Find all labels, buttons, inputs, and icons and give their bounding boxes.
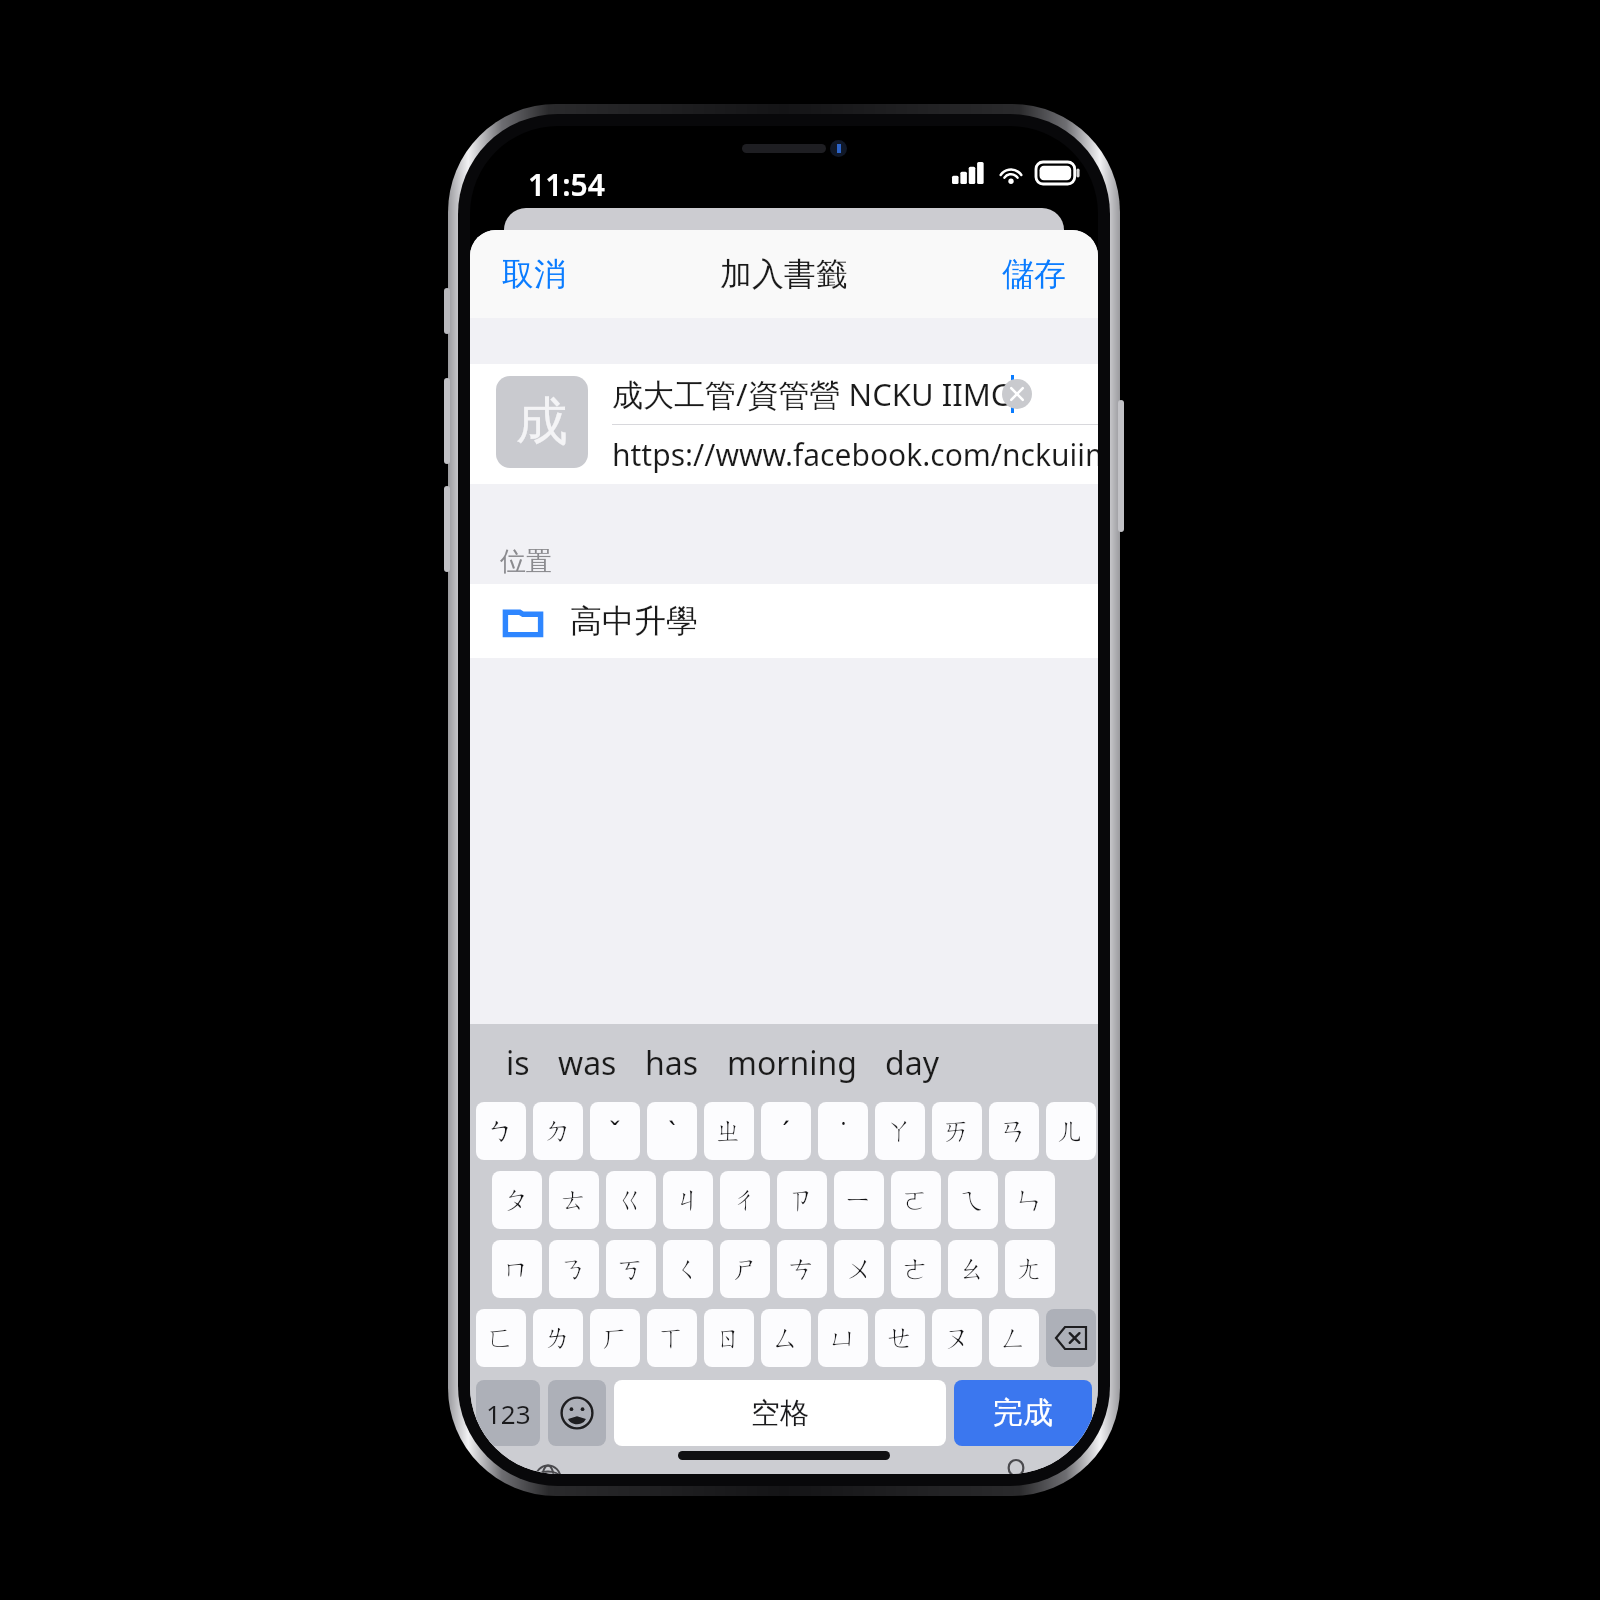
staticText: ㄗ <box>788 1183 816 1217</box>
button[interactable]: ㄓ <box>704 1102 754 1160</box>
staticText: morning <box>727 1041 857 1085</box>
button[interactable]: ˊ <box>761 1102 811 1160</box>
button[interactable]: https://www.facebook.com/nckuiimc/ <box>612 424 1098 484</box>
staticText: ㄒ <box>658 1321 686 1355</box>
button[interactable]: ㄏ <box>590 1309 640 1367</box>
staticText: ㄐ <box>674 1183 702 1217</box>
button[interactable]: ㄌ <box>533 1309 583 1367</box>
staticText: ㄖ <box>715 1321 743 1355</box>
button[interactable]: ㄉ <box>533 1102 583 1160</box>
button[interactable]: ˇ <box>590 1102 640 1160</box>
staticText: ㄕ <box>731 1252 759 1286</box>
staticText: ㄋ <box>560 1252 588 1286</box>
staticText: 完成 <box>993 1394 1053 1432</box>
button[interactable]: ㄍ <box>606 1171 656 1229</box>
button[interactable]: ㄋ <box>549 1240 599 1298</box>
button[interactable]: ㄐ <box>663 1171 713 1229</box>
button[interactable]: ㄅ <box>476 1102 526 1160</box>
staticText: ㄘ <box>788 1252 816 1286</box>
staticText: ㄢ <box>1000 1114 1028 1148</box>
button[interactable]: ㄖ <box>704 1309 754 1367</box>
button[interactable]: ㄢ <box>989 1102 1039 1160</box>
button[interactable]: ㄛ <box>891 1171 941 1229</box>
staticText: ㄊ <box>560 1183 588 1217</box>
button[interactable]: morning <box>713 1033 871 1093</box>
button[interactable]: ㄨ <box>834 1240 884 1298</box>
button[interactable]: 成大工管/資管營 NCKU IIMC <box>612 364 1098 424</box>
button[interactable]: ㄣ <box>1005 1171 1055 1229</box>
staticText: ˙ <box>841 1113 846 1150</box>
button[interactable]: ㄑ <box>663 1240 713 1298</box>
button[interactable]: day <box>871 1033 953 1093</box>
staticText: ㄇ <box>503 1252 531 1286</box>
staticText: was <box>558 1041 617 1085</box>
staticText: ㄑ <box>674 1252 702 1286</box>
button[interactable]: ㄕ <box>720 1240 770 1298</box>
button[interactable]: ㄒ <box>647 1309 697 1367</box>
staticText: ˋ <box>668 1113 676 1150</box>
button[interactable]: ㄇ <box>492 1240 542 1298</box>
staticText: 儲存 <box>1002 254 1066 294</box>
staticText: ㄡ <box>943 1321 971 1355</box>
button[interactable]: 123 <box>476 1380 540 1446</box>
staticText: ㄣ <box>1016 1183 1044 1217</box>
staticText: ㄍ <box>617 1183 645 1217</box>
staticText: 成大工管/資管營 NCKU IIMC <box>612 373 1011 415</box>
button[interactable]: ˋ <box>647 1102 697 1160</box>
staticText: ㄉ <box>544 1114 572 1148</box>
staticText: ㄜ <box>902 1252 930 1286</box>
button[interactable]: ㄡ <box>932 1309 982 1367</box>
staticText: ㄠ <box>959 1252 987 1286</box>
button[interactable]: Clear text <box>1000 377 1034 411</box>
button[interactable]: Emoji keyboard <box>548 1380 606 1446</box>
staticText: ㄌ <box>544 1321 572 1355</box>
button[interactable]: ㄠ <box>948 1240 998 1298</box>
button[interactable]: ㄞ <box>932 1102 982 1160</box>
staticText: has <box>645 1041 699 1085</box>
button[interactable]: ㄝ <box>875 1309 925 1367</box>
staticText: ㄅ <box>487 1114 515 1148</box>
button[interactable]: 儲存 <box>990 244 1078 304</box>
button[interactable]: 完成 <box>954 1380 1092 1446</box>
staticText: 位置 <box>500 545 552 578</box>
staticText: https://www.facebook.com/nckuiimc/ <box>612 434 1098 475</box>
staticText: 成 <box>516 389 568 455</box>
button[interactable]: 取消 <box>490 244 578 304</box>
button[interactable]: ˙ <box>818 1102 868 1160</box>
staticText: ㄈ <box>487 1321 515 1355</box>
button[interactable]: ㄟ <box>948 1171 998 1229</box>
button[interactable]: ㄦ <box>1046 1102 1096 1160</box>
staticText: ㄆ <box>503 1183 531 1217</box>
button[interactable]: ㄙ <box>761 1309 811 1367</box>
staticText: ㄨ <box>845 1252 873 1286</box>
button[interactable]: Backspace <box>1046 1309 1096 1367</box>
button[interactable]: ㄩ <box>818 1309 868 1367</box>
button[interactable]: ㄎ <box>606 1240 656 1298</box>
button[interactable]: has <box>631 1033 713 1093</box>
button[interactable]: ㄤ <box>1005 1240 1055 1298</box>
button[interactable]: 空格 <box>614 1380 946 1446</box>
button[interactable]: ㄘ <box>777 1240 827 1298</box>
button[interactable]: was <box>544 1033 631 1093</box>
staticText: ㄚ <box>886 1114 914 1148</box>
staticText: ㄎ <box>617 1252 645 1286</box>
staticText: ㄧ <box>845 1183 873 1217</box>
button[interactable]: Dictation <box>990 1460 1042 1474</box>
button[interactable]: ㄗ <box>777 1171 827 1229</box>
staticText: ㄤ <box>1016 1252 1044 1286</box>
button[interactable]: is <box>492 1033 544 1093</box>
staticText: day <box>885 1041 939 1085</box>
button[interactable]: ㄚ <box>875 1102 925 1160</box>
staticText: 123 <box>486 1396 531 1431</box>
button[interactable]: ㄈ <box>476 1309 526 1367</box>
button[interactable]: ㄔ <box>720 1171 770 1229</box>
button[interactable]: ㄆ <box>492 1171 542 1229</box>
button[interactable]: Change keyboard language <box>528 1464 580 1474</box>
staticText: ㄦ <box>1057 1114 1085 1148</box>
staticText: ㄔ <box>731 1183 759 1217</box>
button[interactable]: ㄥ <box>989 1309 1039 1367</box>
button[interactable]: ㄊ <box>549 1171 599 1229</box>
button[interactable]: ㄧ <box>834 1171 884 1229</box>
button[interactable]: ㄜ <box>891 1240 941 1298</box>
button[interactable]: 高中升學 <box>470 584 1098 658</box>
